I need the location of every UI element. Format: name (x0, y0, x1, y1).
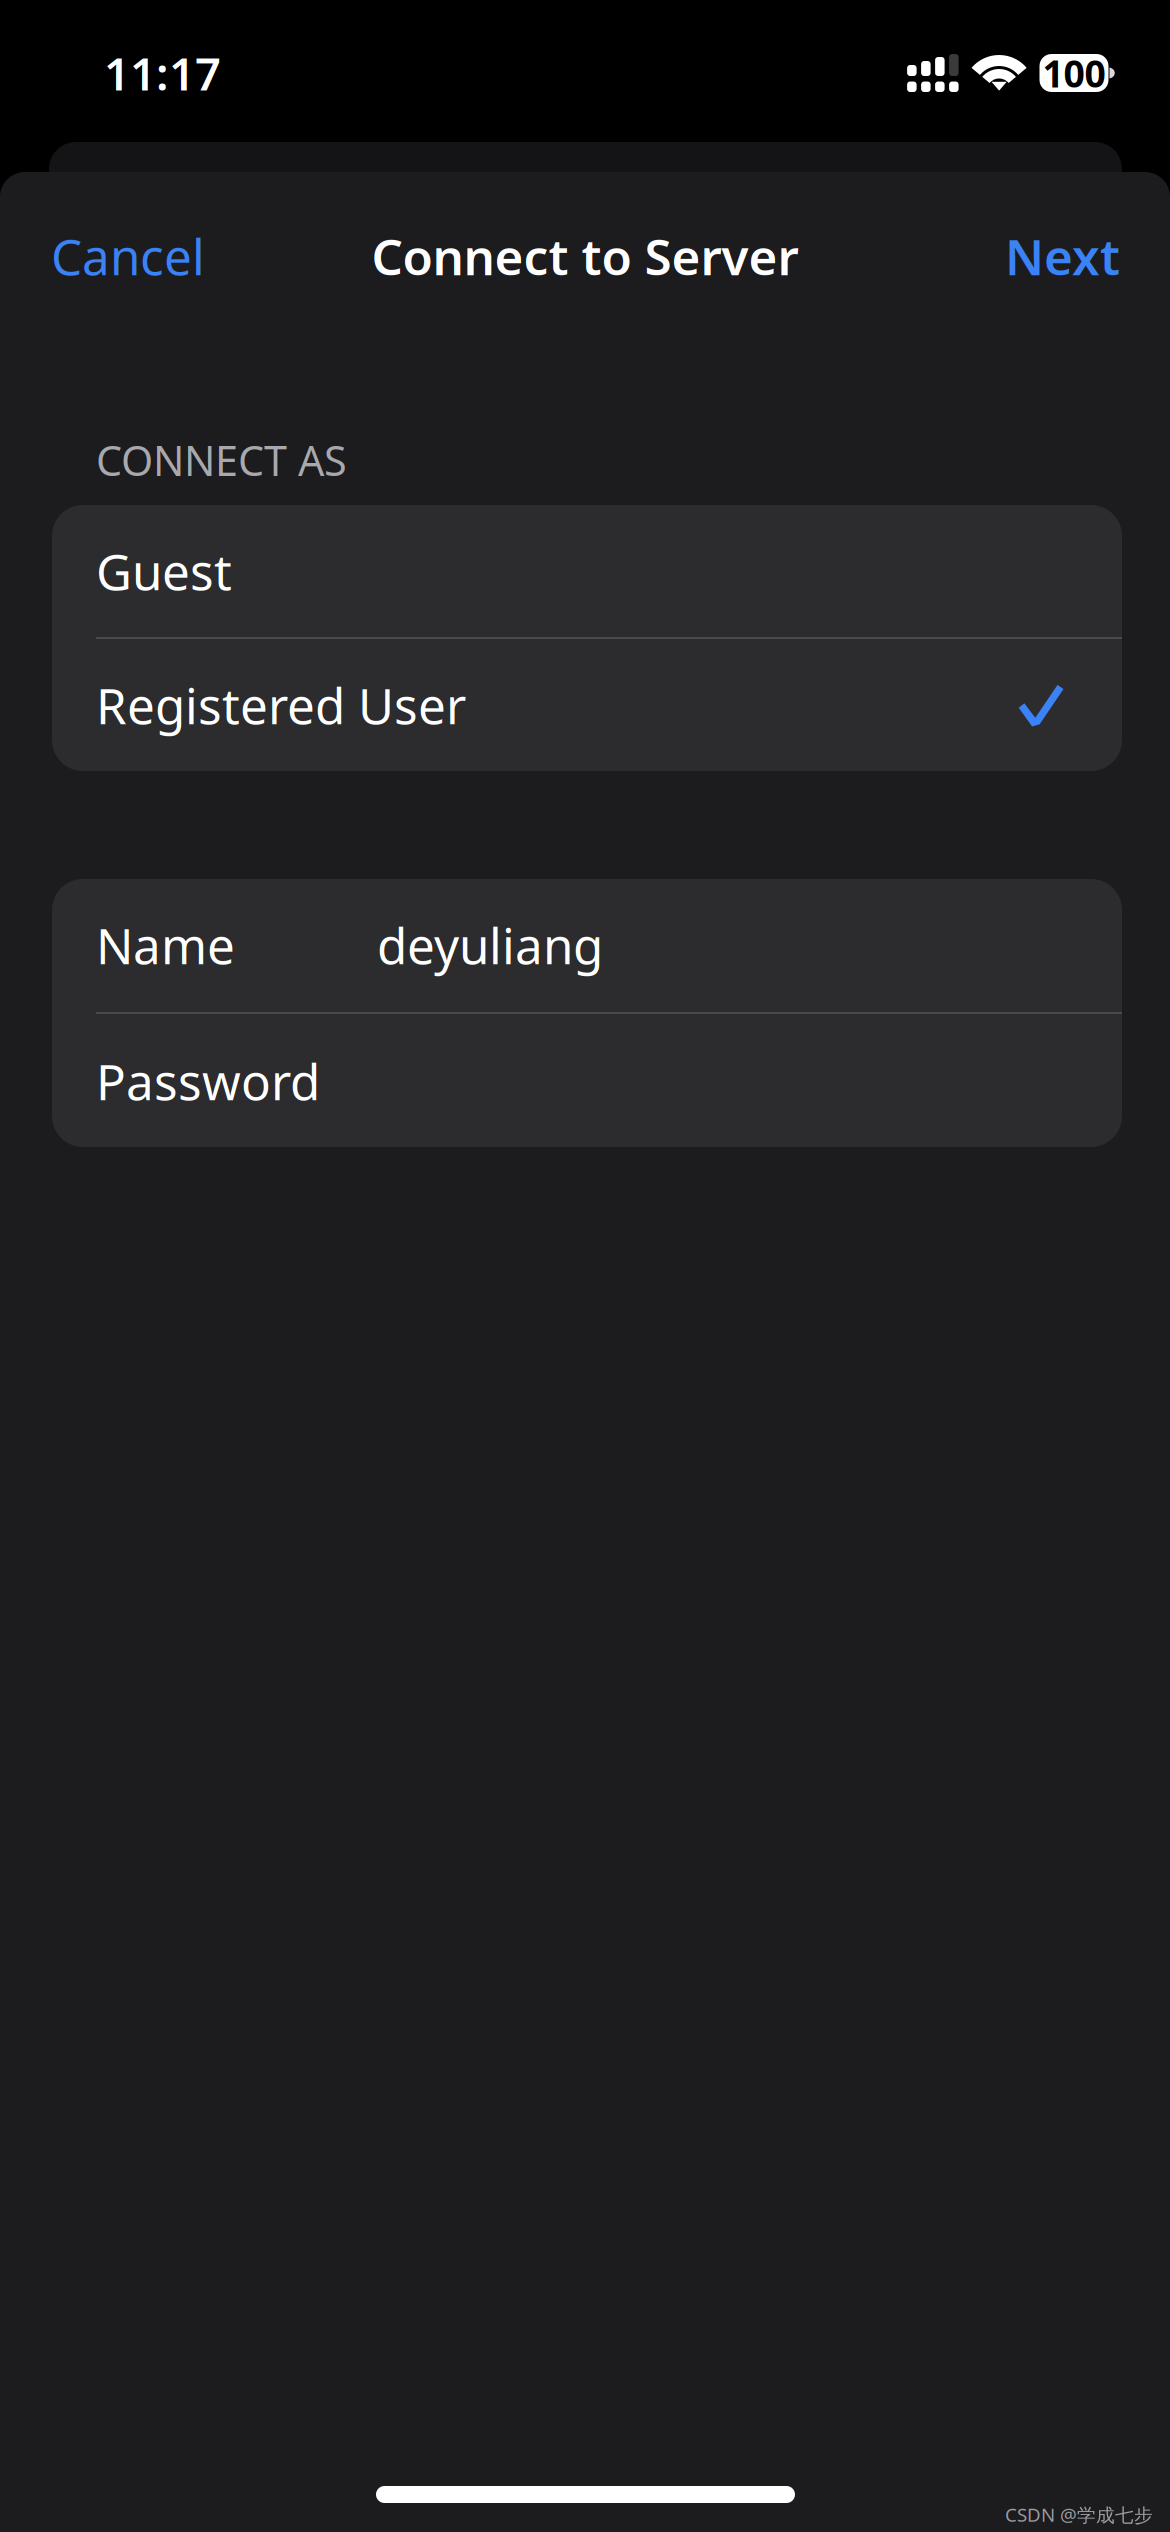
staticText: Cancel (51, 223, 205, 289)
button[interactable]: Guest (52, 505, 1122, 637)
staticText: Guest (96, 538, 232, 604)
staticText: 100 (1042, 48, 1105, 98)
staticText: Password (96, 1048, 320, 1114)
button[interactable]: Password (52, 1014, 1122, 1148)
staticText: Connect to Server (371, 223, 798, 289)
button[interactable]: Next (1005, 200, 1120, 312)
staticText: CONNECT AS (96, 433, 347, 487)
staticText: Registered User (96, 672, 466, 738)
staticText: Name (96, 912, 235, 978)
staticText: CSDN @学成七步 (1005, 2502, 1153, 2527)
staticText: Next (1005, 223, 1120, 289)
button[interactable]: Cancel (51, 200, 205, 312)
button[interactable]: Name (52, 878, 1122, 1012)
button[interactable]: Registered User (52, 639, 1122, 771)
staticText: 11:17 (104, 43, 221, 103)
staticText: deyuliang (377, 912, 603, 978)
